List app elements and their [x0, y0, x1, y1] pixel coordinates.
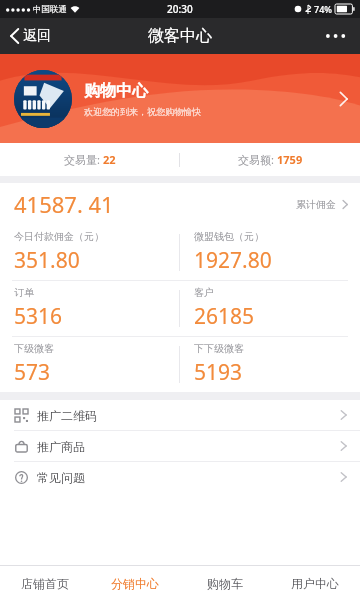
button[interactable]: 购物中心	[0, 54, 360, 143]
staticText: 常见问题	[37, 470, 85, 485]
staticText: 用户中心	[291, 576, 339, 591]
button[interactable]: 用户中心	[270, 566, 360, 600]
staticText: 推广商品	[37, 439, 85, 454]
button[interactable]: 返回	[0, 18, 61, 54]
button[interactable]: 下级微客	[0, 337, 179, 392]
staticText: 返回	[23, 27, 51, 45]
button[interactable]: 下下级微客	[180, 337, 360, 392]
staticText: 购物车	[207, 576, 243, 591]
staticText: 店铺首页	[21, 576, 69, 591]
staticText: 交易额:	[238, 152, 277, 167]
button[interactable]: 微盟钱包（元）	[180, 225, 360, 280]
staticText: 74%	[314, 3, 332, 15]
button[interactable]: More options	[312, 18, 360, 54]
staticText: 22	[103, 152, 116, 167]
staticText: 26185	[194, 302, 255, 331]
button[interactable]: 推广商品	[0, 431, 360, 461]
staticText: 5316	[14, 302, 63, 331]
staticText: 下级微客	[14, 342, 54, 355]
staticText: 41587. 41	[14, 189, 114, 219]
staticText: 交易量:	[64, 152, 103, 167]
staticText: 下下级微客	[194, 342, 244, 355]
button[interactable]: 分销中心	[90, 566, 180, 600]
staticText: 1927.80	[194, 246, 272, 275]
staticText: 20:30	[167, 2, 193, 16]
staticText: 欢迎您的到来，祝您购物愉快	[84, 106, 201, 117]
button[interactable]: 购物车	[180, 566, 270, 600]
staticText: 分销中心	[111, 576, 159, 591]
staticText: 微盟钱包（元）	[194, 230, 264, 243]
staticText: 推广二维码	[37, 408, 97, 423]
button[interactable]: 今日付款佣金（元）	[0, 225, 179, 280]
staticText: 351.80	[14, 246, 80, 275]
staticText: 累计佣金	[296, 198, 336, 211]
staticText: 微客中心	[148, 26, 212, 46]
button[interactable]: 41587. 41	[0, 183, 360, 225]
staticText: 客户	[194, 286, 214, 299]
button[interactable]: 订单	[0, 281, 179, 336]
button[interactable]: 常见问题	[0, 462, 360, 492]
button[interactable]: 推广二维码	[0, 400, 360, 430]
button[interactable]: 客户	[180, 281, 360, 336]
staticText: 1759	[277, 152, 303, 167]
staticText: 今日付款佣金（元）	[14, 230, 104, 243]
staticText: 573	[14, 358, 51, 387]
staticText: 订单	[14, 286, 34, 299]
staticText: 中国联通	[33, 4, 67, 15]
staticText: 购物中心	[84, 81, 148, 101]
button[interactable]: 店铺首页	[0, 566, 90, 600]
staticText: 5193	[194, 358, 243, 387]
